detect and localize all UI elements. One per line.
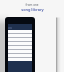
button[interactable] xyxy=(8,42,32,46)
button[interactable] xyxy=(8,34,32,38)
button[interactable] xyxy=(8,38,32,42)
button[interactable] xyxy=(8,54,32,58)
button[interactable] xyxy=(8,46,32,50)
staticText: from one xyxy=(25,3,39,7)
staticText: song library xyxy=(21,7,44,12)
button[interactable] xyxy=(8,50,32,54)
button[interactable] xyxy=(8,30,32,34)
